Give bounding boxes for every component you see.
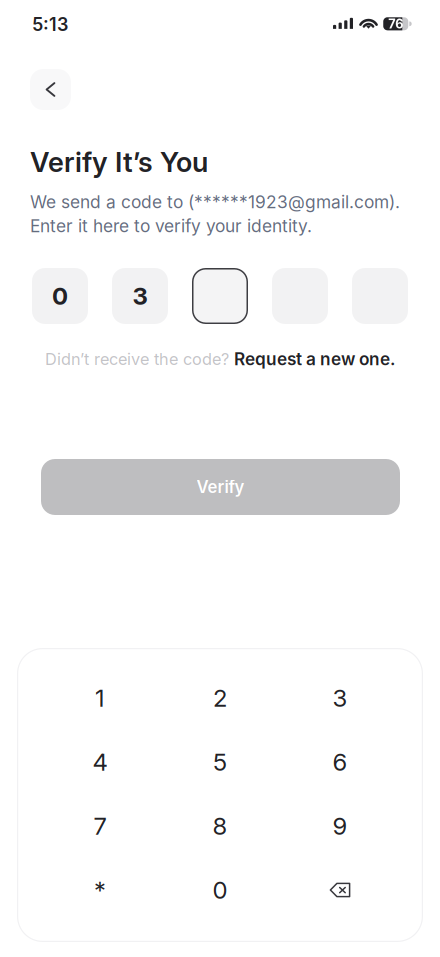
button[interactable]: 5: [161, 731, 279, 793]
staticText: Request a new one.: [234, 349, 395, 369]
staticText: 9: [332, 811, 347, 840]
button[interactable]: 7: [41, 795, 159, 857]
button[interactable]: Verify: [41, 459, 400, 515]
staticText: Enter it here to verify your identity.: [30, 215, 312, 236]
staticText: 4: [92, 747, 107, 776]
button[interactable]: 8: [161, 795, 279, 857]
button[interactable]: *: [41, 859, 159, 921]
staticText: 8: [212, 811, 227, 840]
staticText: 76: [388, 16, 403, 31]
staticText: 0: [212, 875, 227, 904]
button[interactable]: Request a new one.: [234, 349, 395, 369]
button[interactable]: 2: [161, 667, 279, 729]
staticText: Verify It’s You: [30, 145, 208, 179]
button[interactable]: 9: [281, 795, 399, 857]
button[interactable]: 4: [41, 731, 159, 793]
staticText: 1: [95, 683, 105, 712]
button[interactable]: Delete: [281, 859, 399, 921]
staticText: 0: [52, 281, 68, 310]
button[interactable]: 3: [281, 667, 399, 729]
staticText: We send a code to (******1923@gmail.com)…: [30, 191, 400, 212]
staticText: 2: [213, 683, 227, 712]
button[interactable]: 6: [281, 731, 399, 793]
staticText: 7: [93, 811, 106, 840]
staticText: Verify: [196, 477, 244, 497]
staticText: 3: [332, 683, 347, 712]
button[interactable]: 0: [161, 859, 279, 921]
button[interactable]: 1: [41, 667, 159, 729]
staticText: 3: [132, 281, 147, 310]
staticText: 6: [332, 747, 347, 776]
button[interactable]: Back: [30, 69, 71, 110]
staticText: 5:13: [32, 14, 68, 35]
staticText: Didn’t receive the code?: [45, 349, 234, 369]
staticText: *: [94, 875, 106, 904]
staticText: 5: [213, 747, 227, 776]
